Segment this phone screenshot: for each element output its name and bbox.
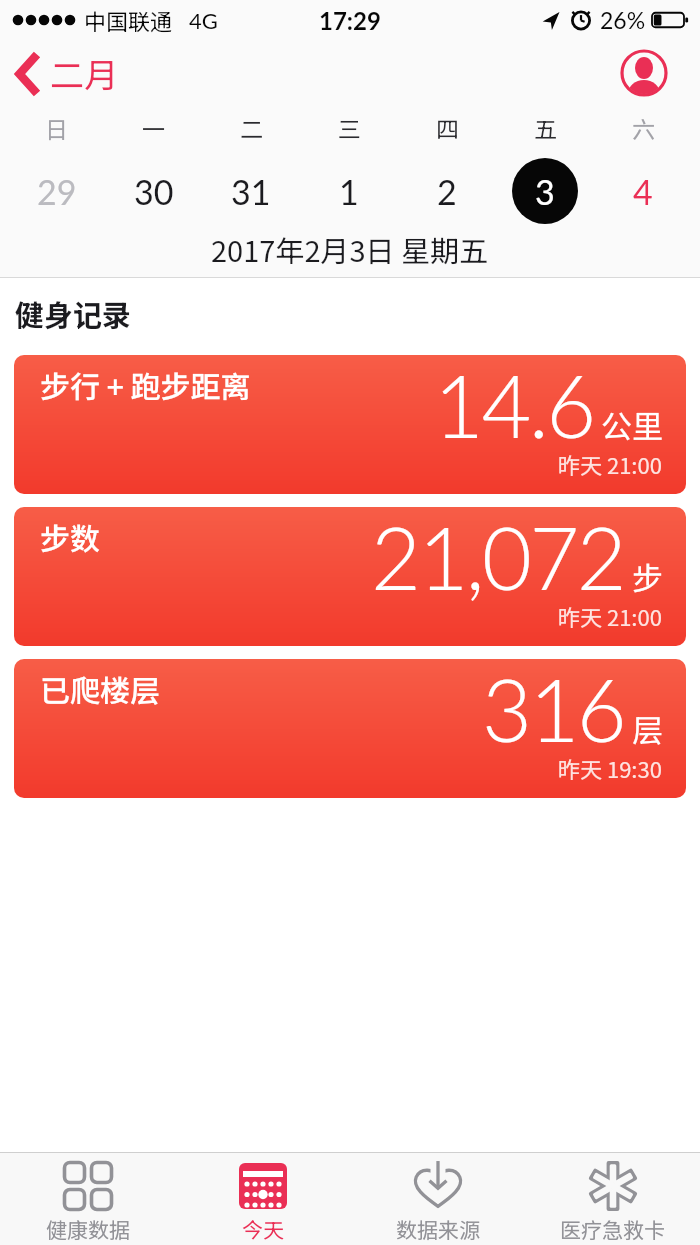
staticText: 2017年2月3日 星期五 — [211, 228, 489, 270]
button[interactable]: 今天 — [175, 1153, 350, 1245]
staticText: 层 — [632, 706, 663, 751]
staticText: 步数 — [40, 515, 100, 558]
staticText: 昨天 21:00 — [558, 600, 662, 632]
button[interactable]: 3 — [496, 148, 594, 234]
staticText: 4 — [633, 171, 653, 212]
staticText: 316 — [482, 659, 625, 760]
staticText: 中国联通 — [84, 4, 173, 36]
staticText: 六 — [632, 111, 655, 144]
staticText: 日 — [45, 111, 68, 144]
staticText: 26% — [600, 6, 646, 34]
staticText: 3 — [535, 171, 555, 212]
staticText: 已爬楼层 — [40, 667, 160, 710]
staticText: 五 — [534, 111, 557, 144]
staticText: 17:29 — [319, 6, 381, 35]
staticText: 健康数据 — [46, 1214, 130, 1244]
staticText: 步行 + 跑步距离 — [40, 363, 251, 406]
button[interactable]: 30 — [105, 148, 202, 234]
staticText: 今天 — [242, 1214, 284, 1244]
staticText: 二 — [240, 111, 263, 144]
staticText: 1 — [339, 171, 359, 212]
staticText: 昨天 19:30 — [558, 752, 662, 784]
staticText: 公里 — [601, 402, 663, 447]
staticText: 29 — [37, 171, 77, 212]
button[interactable]: 1 — [300, 148, 398, 234]
staticText: 健身记录 — [15, 292, 132, 334]
button[interactable]: 步数 — [14, 507, 686, 646]
staticText: 14.6 — [434, 355, 594, 456]
staticText: 四 — [436, 111, 459, 144]
button[interactable]: 二月 — [16, 49, 118, 98]
button[interactable]: 步行 + 跑步距离 — [14, 355, 686, 494]
staticText: 二月 — [50, 49, 118, 98]
staticText: 31 — [231, 171, 271, 212]
staticText: 4G — [189, 7, 218, 33]
staticText: 数据来源 — [396, 1214, 480, 1244]
staticText: 2 — [437, 171, 457, 212]
button[interactable]: 29 — [8, 148, 105, 234]
button[interactable] — [620, 49, 668, 97]
staticText: 三 — [338, 111, 361, 144]
button[interactable]: 健康数据 — [0, 1153, 175, 1245]
staticText: 一 — [142, 111, 165, 144]
button[interactable]: 已爬楼层 — [14, 659, 686, 798]
button[interactable]: 医疗急救卡 — [525, 1153, 700, 1245]
staticText: 步 — [632, 554, 663, 599]
button[interactable]: 数据来源 — [350, 1153, 525, 1245]
staticText: 21,072 — [371, 507, 625, 608]
button[interactable]: 31 — [202, 148, 300, 234]
button[interactable]: 4 — [594, 148, 692, 234]
staticText: 昨天 21:00 — [558, 448, 662, 480]
staticText: 30 — [134, 171, 174, 212]
staticText: 医疗急救卡 — [560, 1214, 665, 1244]
button[interactable]: 2 — [398, 148, 496, 234]
